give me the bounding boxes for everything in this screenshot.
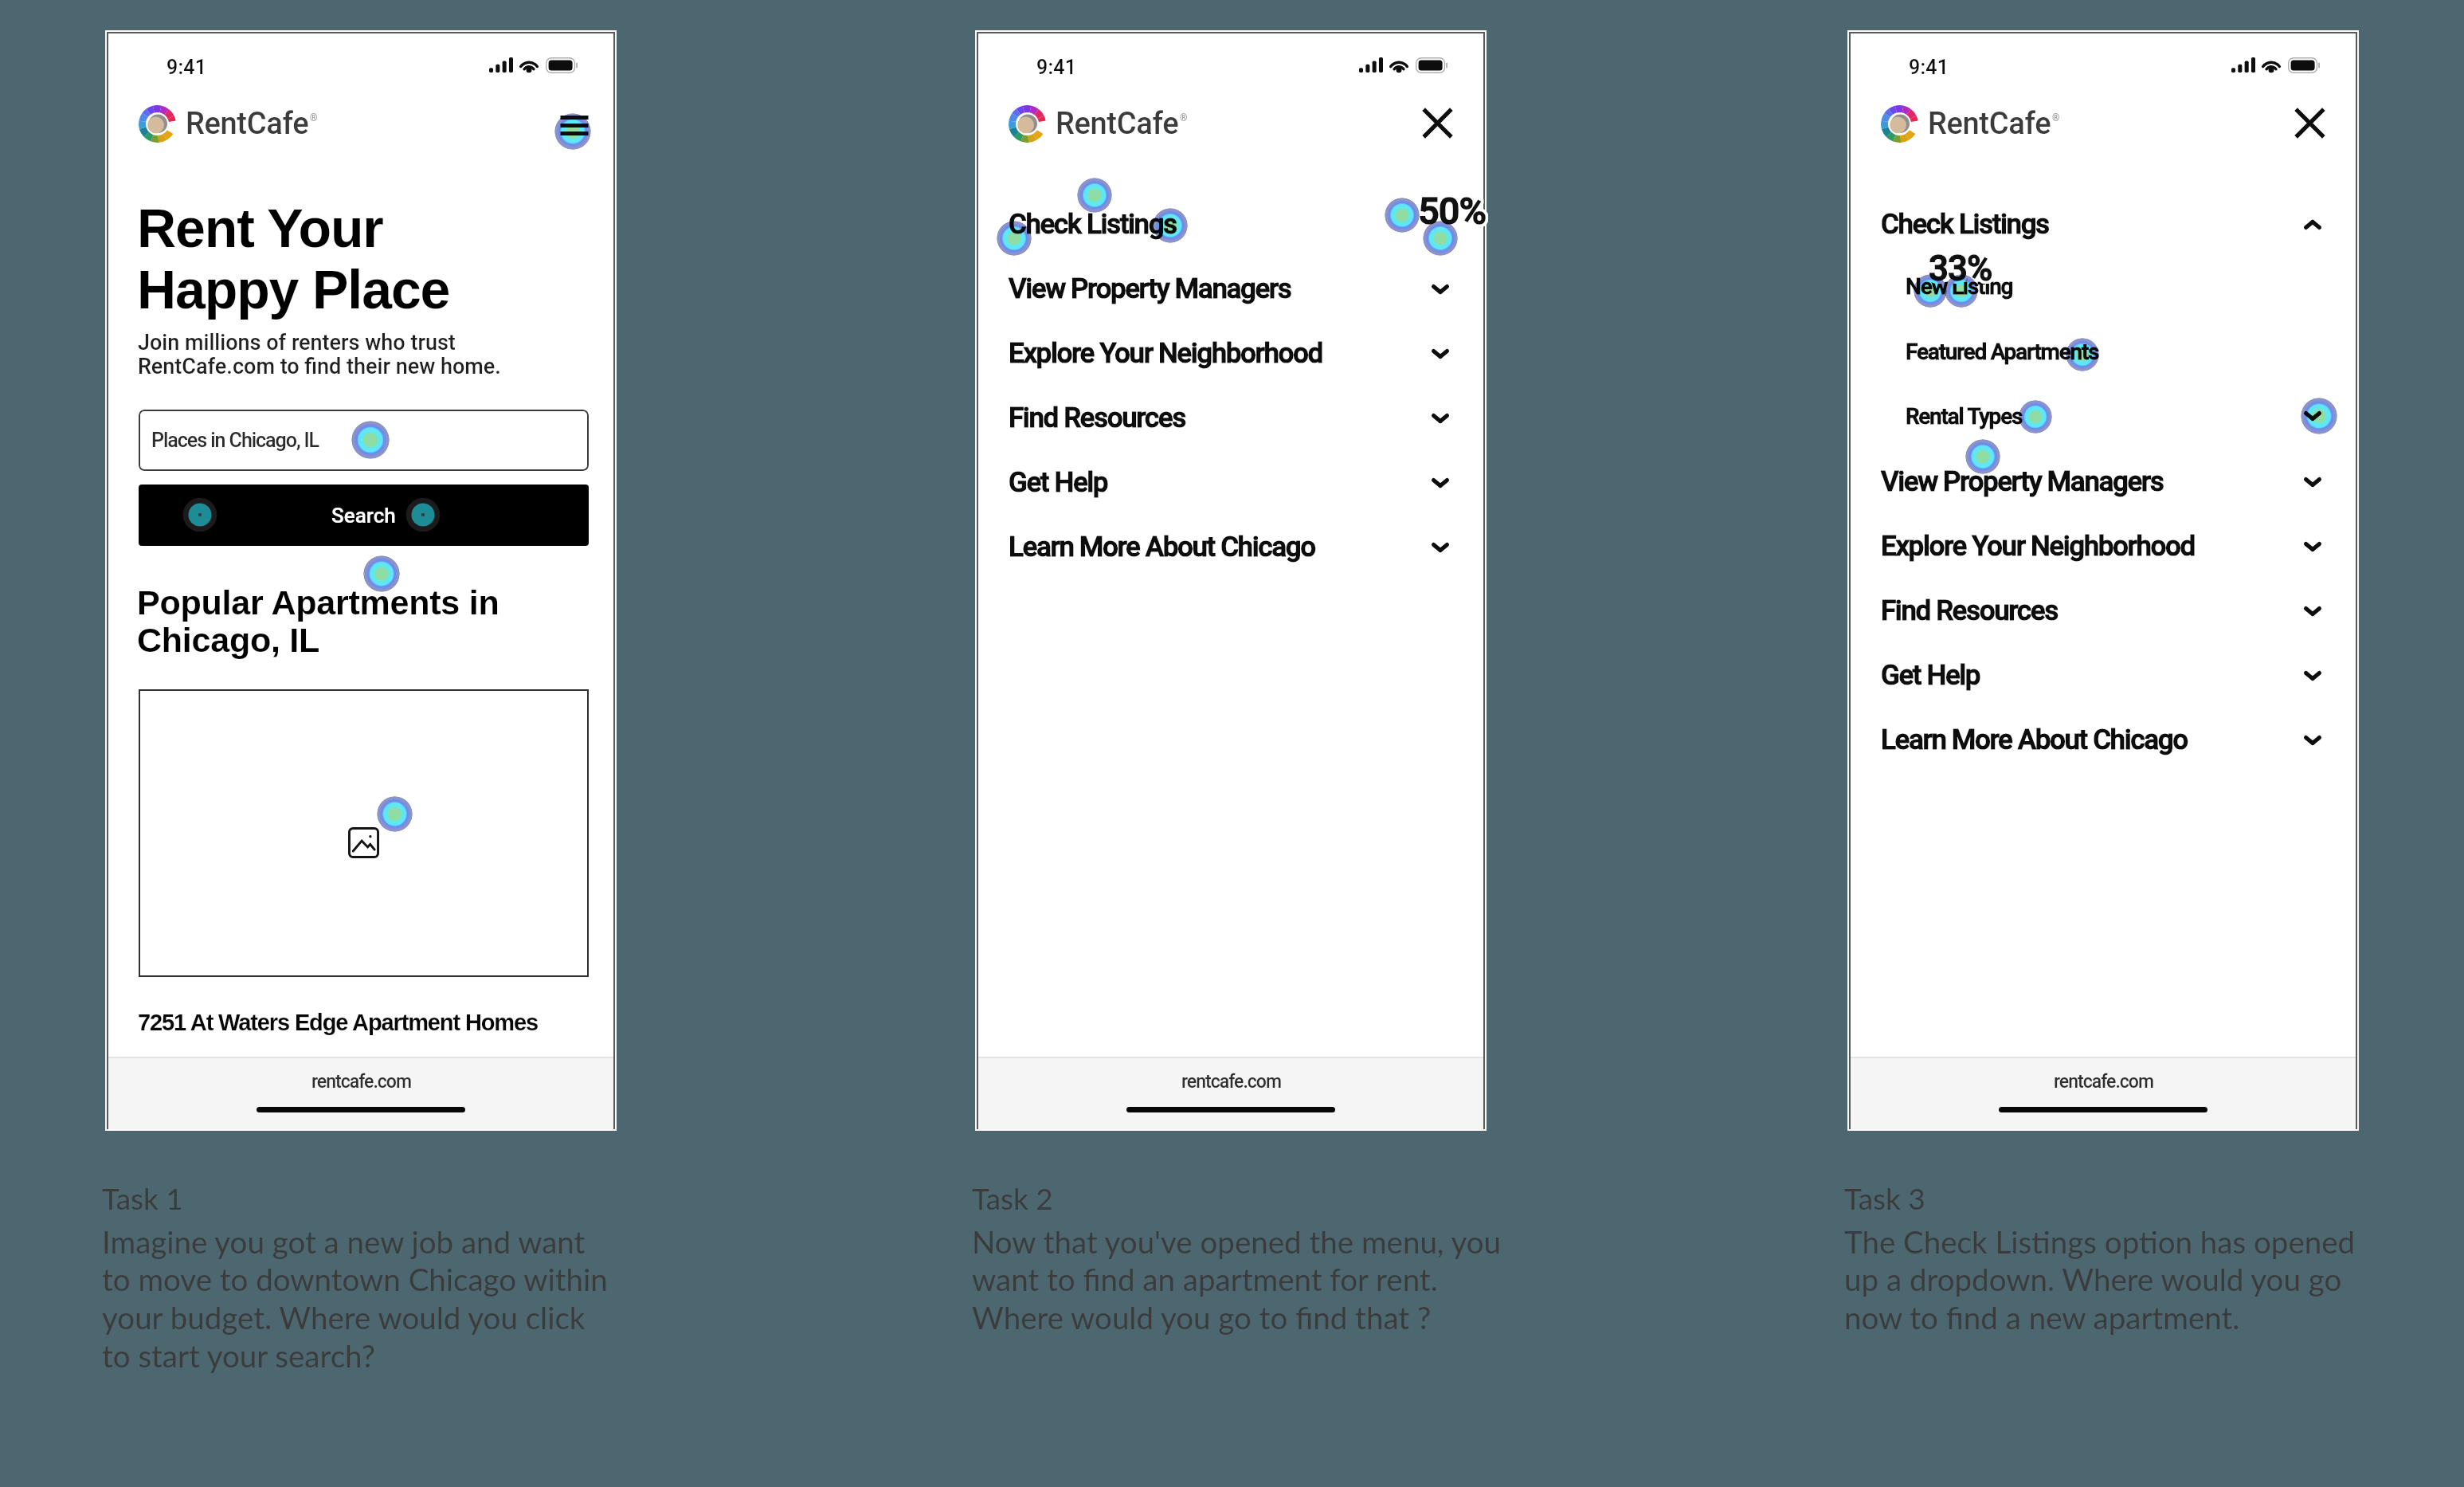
staticText: 33% [1927, 249, 1991, 291]
button[interactable]: RentCafe [1009, 105, 1188, 143]
staticText: Get Help [1881, 659, 1980, 692]
button[interactable]: RentCafe [1881, 105, 2060, 143]
button[interactable] [139, 689, 589, 977]
staticText: 50% [1416, 188, 1483, 232]
staticText: 9:41 [1036, 56, 1077, 79]
staticText: Rent Your Happy Place [137, 198, 450, 320]
staticText: 50% [1418, 191, 1486, 235]
staticText: Task 2 [972, 1180, 1053, 1215]
staticText: 33% [1929, 245, 1993, 287]
button[interactable]: Check Listings [978, 192, 1483, 257]
staticText: The Check Listings option has opened up … [1844, 1223, 2356, 1336]
staticText: 33% [1926, 248, 1990, 289]
staticText: 50% [1420, 190, 1488, 234]
staticText: 33% [1930, 249, 1994, 291]
staticText: 50% [1420, 187, 1488, 231]
staticText: 33% [1929, 248, 1992, 289]
staticText: Search [331, 504, 396, 528]
staticText: 50% [1420, 191, 1487, 235]
staticText: 33% [1927, 246, 1991, 288]
staticText: Check Listings [1009, 208, 1177, 241]
staticText: 33% [1931, 249, 1995, 290]
staticText: Find Resources [1881, 594, 2058, 627]
button[interactable]: Find Resources [1851, 579, 2356, 643]
staticText: 33% [1930, 246, 1994, 288]
staticText: Now that you've opened the menu, you wan… [972, 1223, 1502, 1336]
staticText: 50% [1417, 191, 1485, 235]
staticText: Find Resources [1009, 402, 1185, 434]
staticText: 33% [1926, 249, 1990, 290]
staticText: 33% [1926, 249, 1990, 291]
staticText: 33% [1928, 250, 1992, 292]
staticText: RentCafe [1056, 106, 1179, 142]
staticText: 33% [1927, 250, 1991, 292]
button[interactable]: Featured Apartments [1851, 323, 2356, 380]
button[interactable]: View Property Managers [978, 257, 1483, 321]
staticText: Check Listings [1881, 208, 2049, 241]
staticText: rentcafe.com [311, 1071, 411, 1093]
staticText: 33% [1931, 249, 1995, 291]
button[interactable]: Learn More About Chicago [1851, 708, 2356, 772]
button[interactable]: Find Resources [978, 386, 1483, 450]
staticText: 50% [1420, 190, 1487, 234]
staticText: 50% [1418, 186, 1486, 230]
staticText: 50% [1416, 190, 1483, 233]
button[interactable]: New Listing [1851, 257, 2356, 315]
staticText: Task 3 [1844, 1180, 1925, 1215]
staticText: 50% [1420, 189, 1488, 233]
staticText: 50% [1416, 187, 1483, 231]
staticText: 33% [1931, 247, 1995, 288]
staticText: 50% [1416, 190, 1483, 234]
staticText: Join millions of renters who trust RentC… [138, 330, 501, 379]
staticText: 33% [1927, 245, 1991, 287]
staticText: 33% [1929, 250, 1993, 292]
staticText: 33% [1929, 250, 1992, 292]
staticText: Imagine you got a new job and want to mo… [102, 1223, 608, 1375]
staticText: View Property Managers [1009, 273, 1291, 305]
button[interactable]: Get Help [978, 450, 1483, 515]
button[interactable]: Check Listings [1851, 192, 2356, 257]
staticText: 50% [1418, 189, 1486, 233]
staticText: Featured Apartments [1906, 339, 2099, 365]
staticText: Explore Your Neighborhood [1881, 530, 2195, 563]
button[interactable]: Open navigation menu [547, 105, 585, 143]
staticText: 9:41 [1909, 56, 1949, 79]
staticText: Learn More About Chicago [1881, 724, 2188, 756]
button[interactable]: Places in Chicago, IL [139, 410, 589, 471]
button[interactable]: Explore Your Neighborhood [1851, 514, 2356, 579]
staticText: 33% [1929, 245, 1992, 287]
staticText: Get Help [1009, 466, 1108, 499]
button[interactable]: Close menu [2292, 105, 2327, 140]
staticText: 33% [1926, 247, 1990, 288]
staticText: 50% [1420, 187, 1487, 231]
button[interactable]: RentCafe [139, 105, 318, 143]
staticText: 33% [1931, 248, 1995, 289]
staticText: 33% [1931, 246, 1995, 288]
button[interactable]: Get Help [1851, 643, 2356, 708]
staticText: ® [1180, 112, 1188, 124]
staticText: RentCafe [1928, 106, 2051, 142]
staticText: 50% [1419, 186, 1487, 230]
staticText: 33% [1930, 250, 1994, 292]
staticText: 33% [1930, 245, 1994, 287]
button[interactable]: Explore Your Neighborhood [978, 321, 1483, 386]
staticText: Rental Types [1906, 403, 2023, 430]
button[interactable]: View Property Managers [1851, 449, 2356, 514]
staticText: Explore Your Neighborhood [1009, 337, 1322, 370]
button[interactable]: Learn More About Chicago [978, 515, 1483, 579]
staticText: 50% [1420, 188, 1488, 232]
staticText: 50% [1420, 190, 1488, 233]
staticText: 33% [1926, 246, 1990, 288]
button[interactable]: Close menu [1420, 105, 1455, 140]
staticText: View Property Managers [1881, 465, 2164, 498]
staticText: 33% [1928, 245, 1992, 287]
staticText: New Listing [1906, 273, 2013, 300]
staticText: RentCafe [186, 106, 309, 142]
button[interactable]: Rental Types [1851, 387, 2356, 445]
staticText: 50% [1416, 190, 1484, 234]
staticText: 9:41 [166, 56, 207, 79]
button[interactable]: Search [139, 485, 589, 546]
staticText: 50% [1416, 186, 1484, 230]
staticText: 50% [1416, 189, 1483, 233]
staticText: rentcafe.com [1181, 1071, 1281, 1093]
